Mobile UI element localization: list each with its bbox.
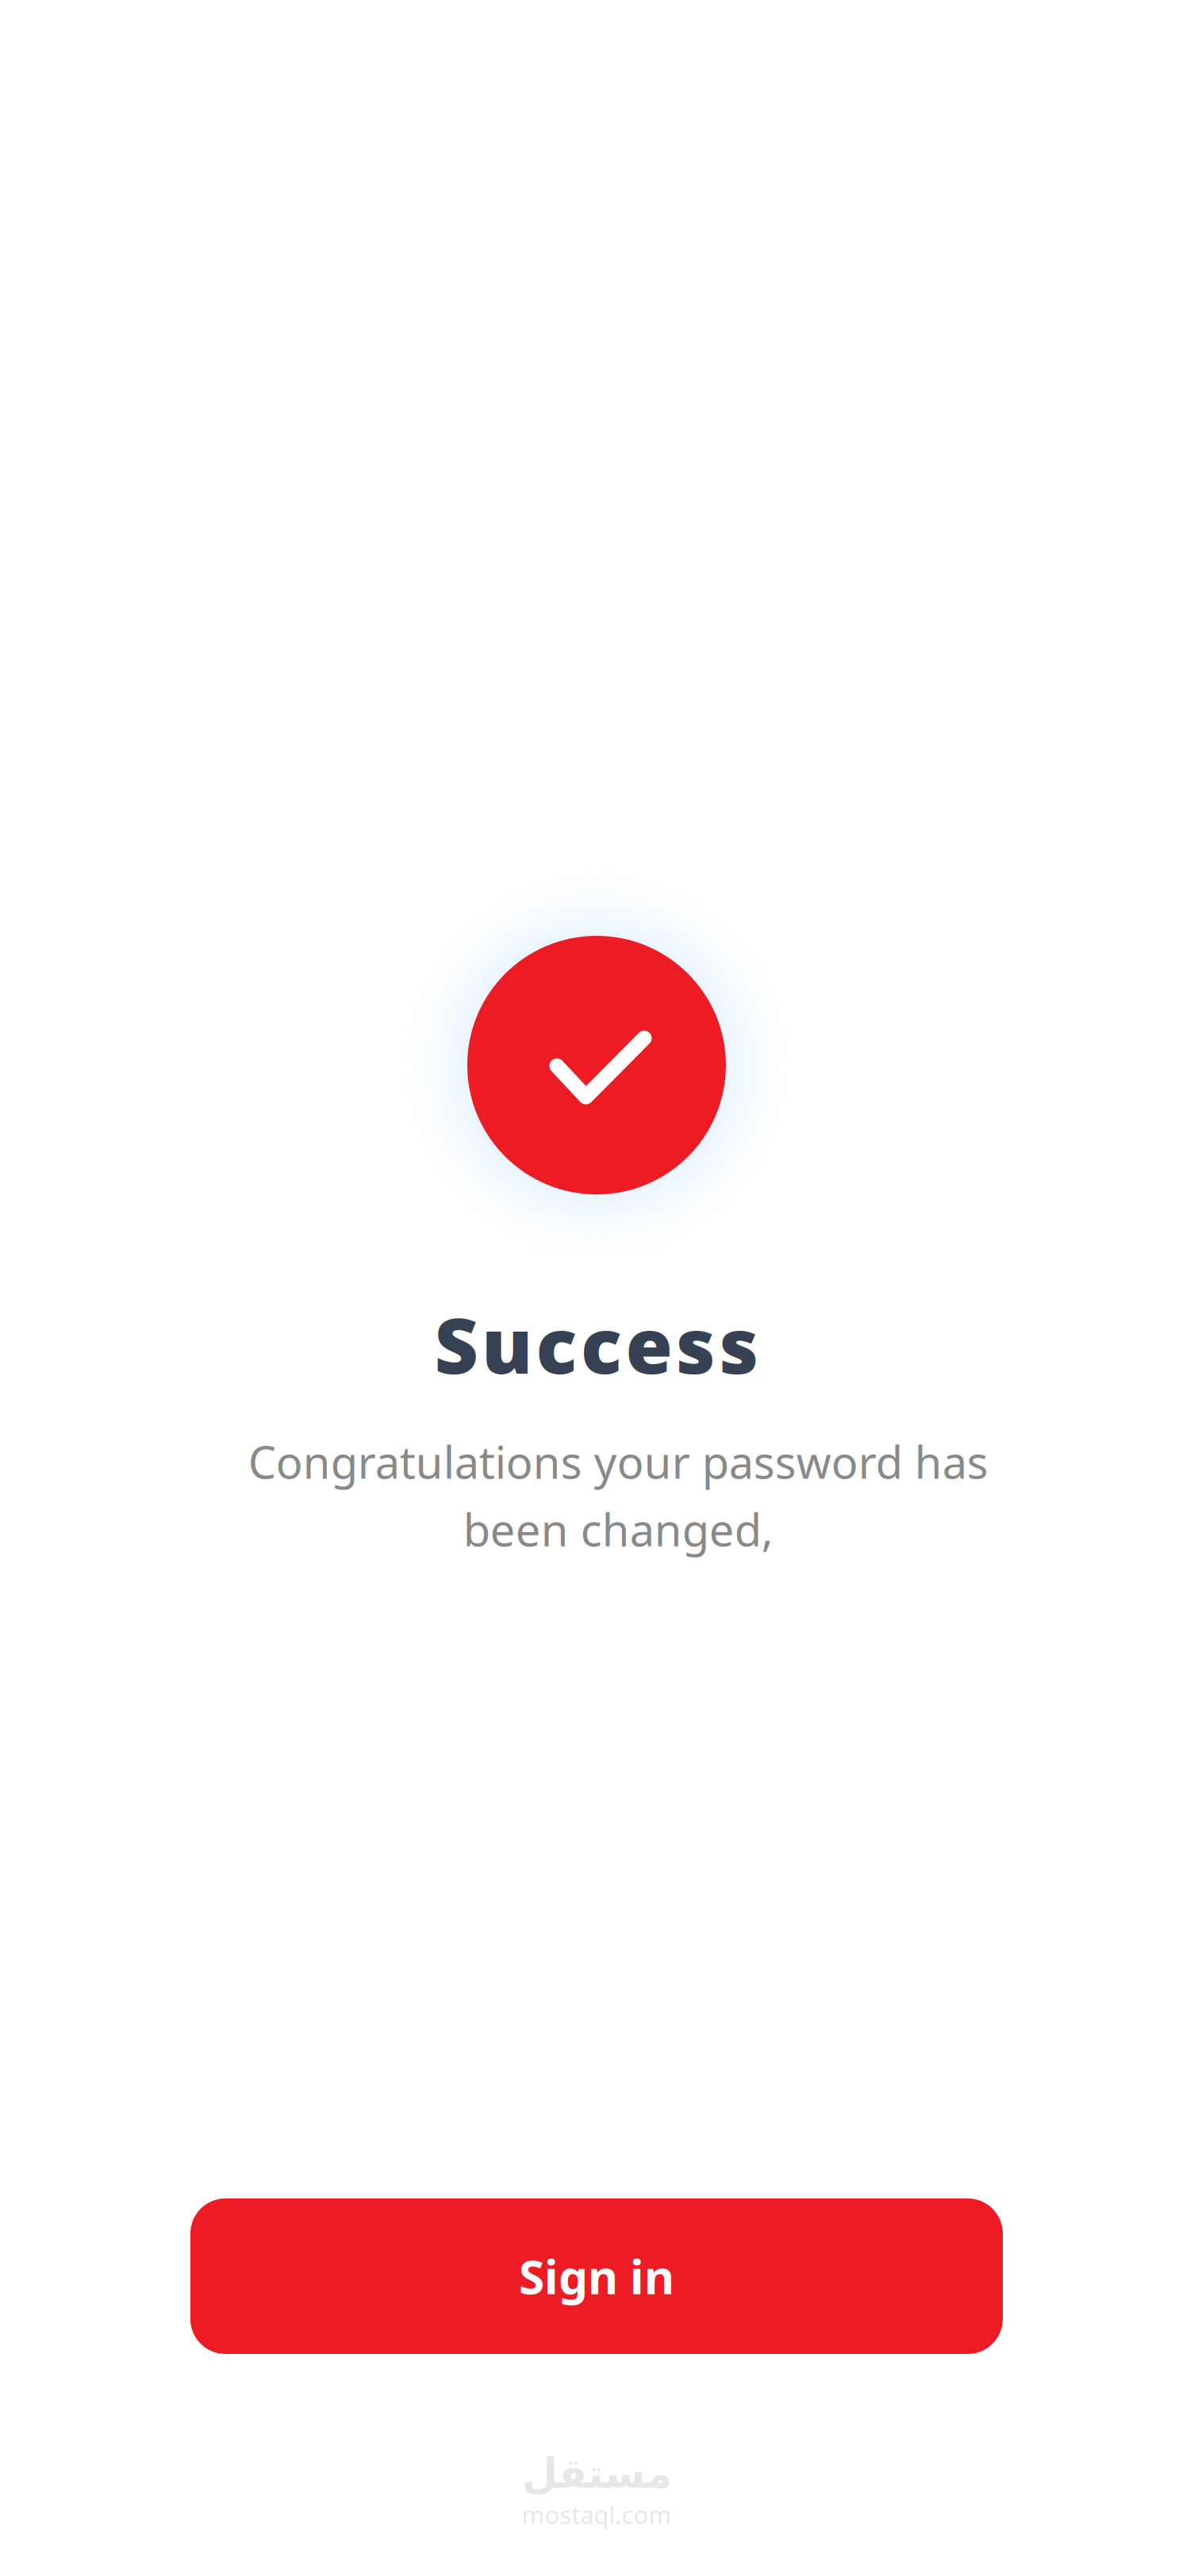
staticText: mostaql.com — [522, 2499, 672, 2531]
staticText: Success — [434, 1294, 759, 1395]
button[interactable]: Sign in — [190, 2198, 1003, 2354]
staticText: Congratulations your password has been c… — [248, 1432, 988, 1559]
staticText: مستقل — [522, 2450, 672, 2497]
staticText: Sign in — [519, 2245, 674, 2307]
